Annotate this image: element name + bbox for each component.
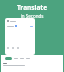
- button[interactable]: Translate: [5, 57, 12, 60]
- staticText: in Seconds: [0, 13, 64, 19]
- button[interactable]: [5, 18, 35, 55]
- staticText: Translate: [0, 3, 64, 12]
